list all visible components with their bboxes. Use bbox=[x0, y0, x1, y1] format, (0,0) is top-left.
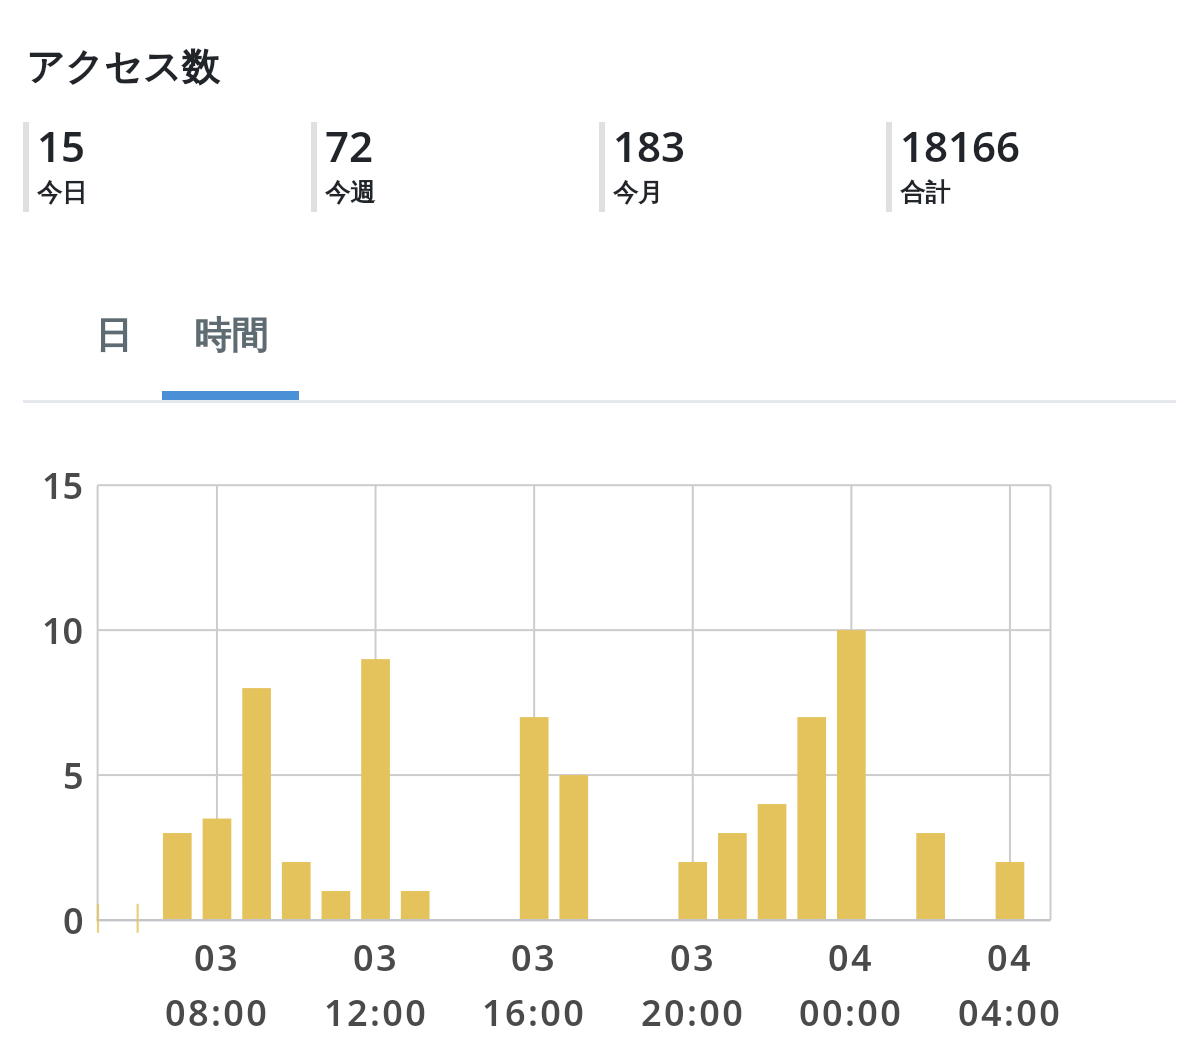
staticText: 03 bbox=[511, 933, 557, 982]
staticText: 16:00 bbox=[482, 988, 587, 1037]
staticText: 日 bbox=[95, 312, 132, 359]
staticText: 04 bbox=[987, 933, 1033, 982]
staticText: 15 bbox=[37, 117, 86, 174]
staticText: 15 bbox=[42, 461, 84, 510]
staticText: 20:00 bbox=[641, 988, 746, 1037]
staticText: 10 bbox=[42, 606, 84, 655]
staticText: 03 bbox=[670, 933, 716, 982]
staticText: 03 bbox=[353, 933, 399, 982]
staticText: 5 bbox=[63, 751, 84, 800]
staticText: 00:00 bbox=[799, 988, 904, 1037]
staticText: 今月 bbox=[613, 177, 663, 208]
staticText: 18166 bbox=[900, 117, 1021, 174]
staticText: 04:00 bbox=[958, 988, 1063, 1037]
button[interactable]: 18166 bbox=[886, 122, 1174, 212]
button[interactable]: 183 bbox=[599, 122, 887, 212]
staticText: 12:00 bbox=[324, 988, 429, 1037]
staticText: 時間 bbox=[194, 312, 268, 359]
button[interactable]: 72 bbox=[311, 122, 599, 212]
staticText: 08:00 bbox=[165, 988, 270, 1037]
staticText: 今日 bbox=[37, 177, 87, 208]
staticText: 03 bbox=[194, 933, 240, 982]
staticText: 72 bbox=[325, 117, 374, 174]
button[interactable]: 時間 bbox=[162, 300, 299, 399]
button[interactable]: 日 bbox=[23, 300, 162, 399]
staticText: 合計 bbox=[900, 177, 950, 208]
staticText: 今週 bbox=[325, 177, 375, 208]
button[interactable]: 15 bbox=[23, 122, 311, 212]
staticText: アクセス数 bbox=[26, 43, 220, 91]
staticText: 0 bbox=[63, 896, 84, 945]
staticText: 183 bbox=[613, 117, 686, 174]
staticText: 04 bbox=[828, 933, 874, 982]
